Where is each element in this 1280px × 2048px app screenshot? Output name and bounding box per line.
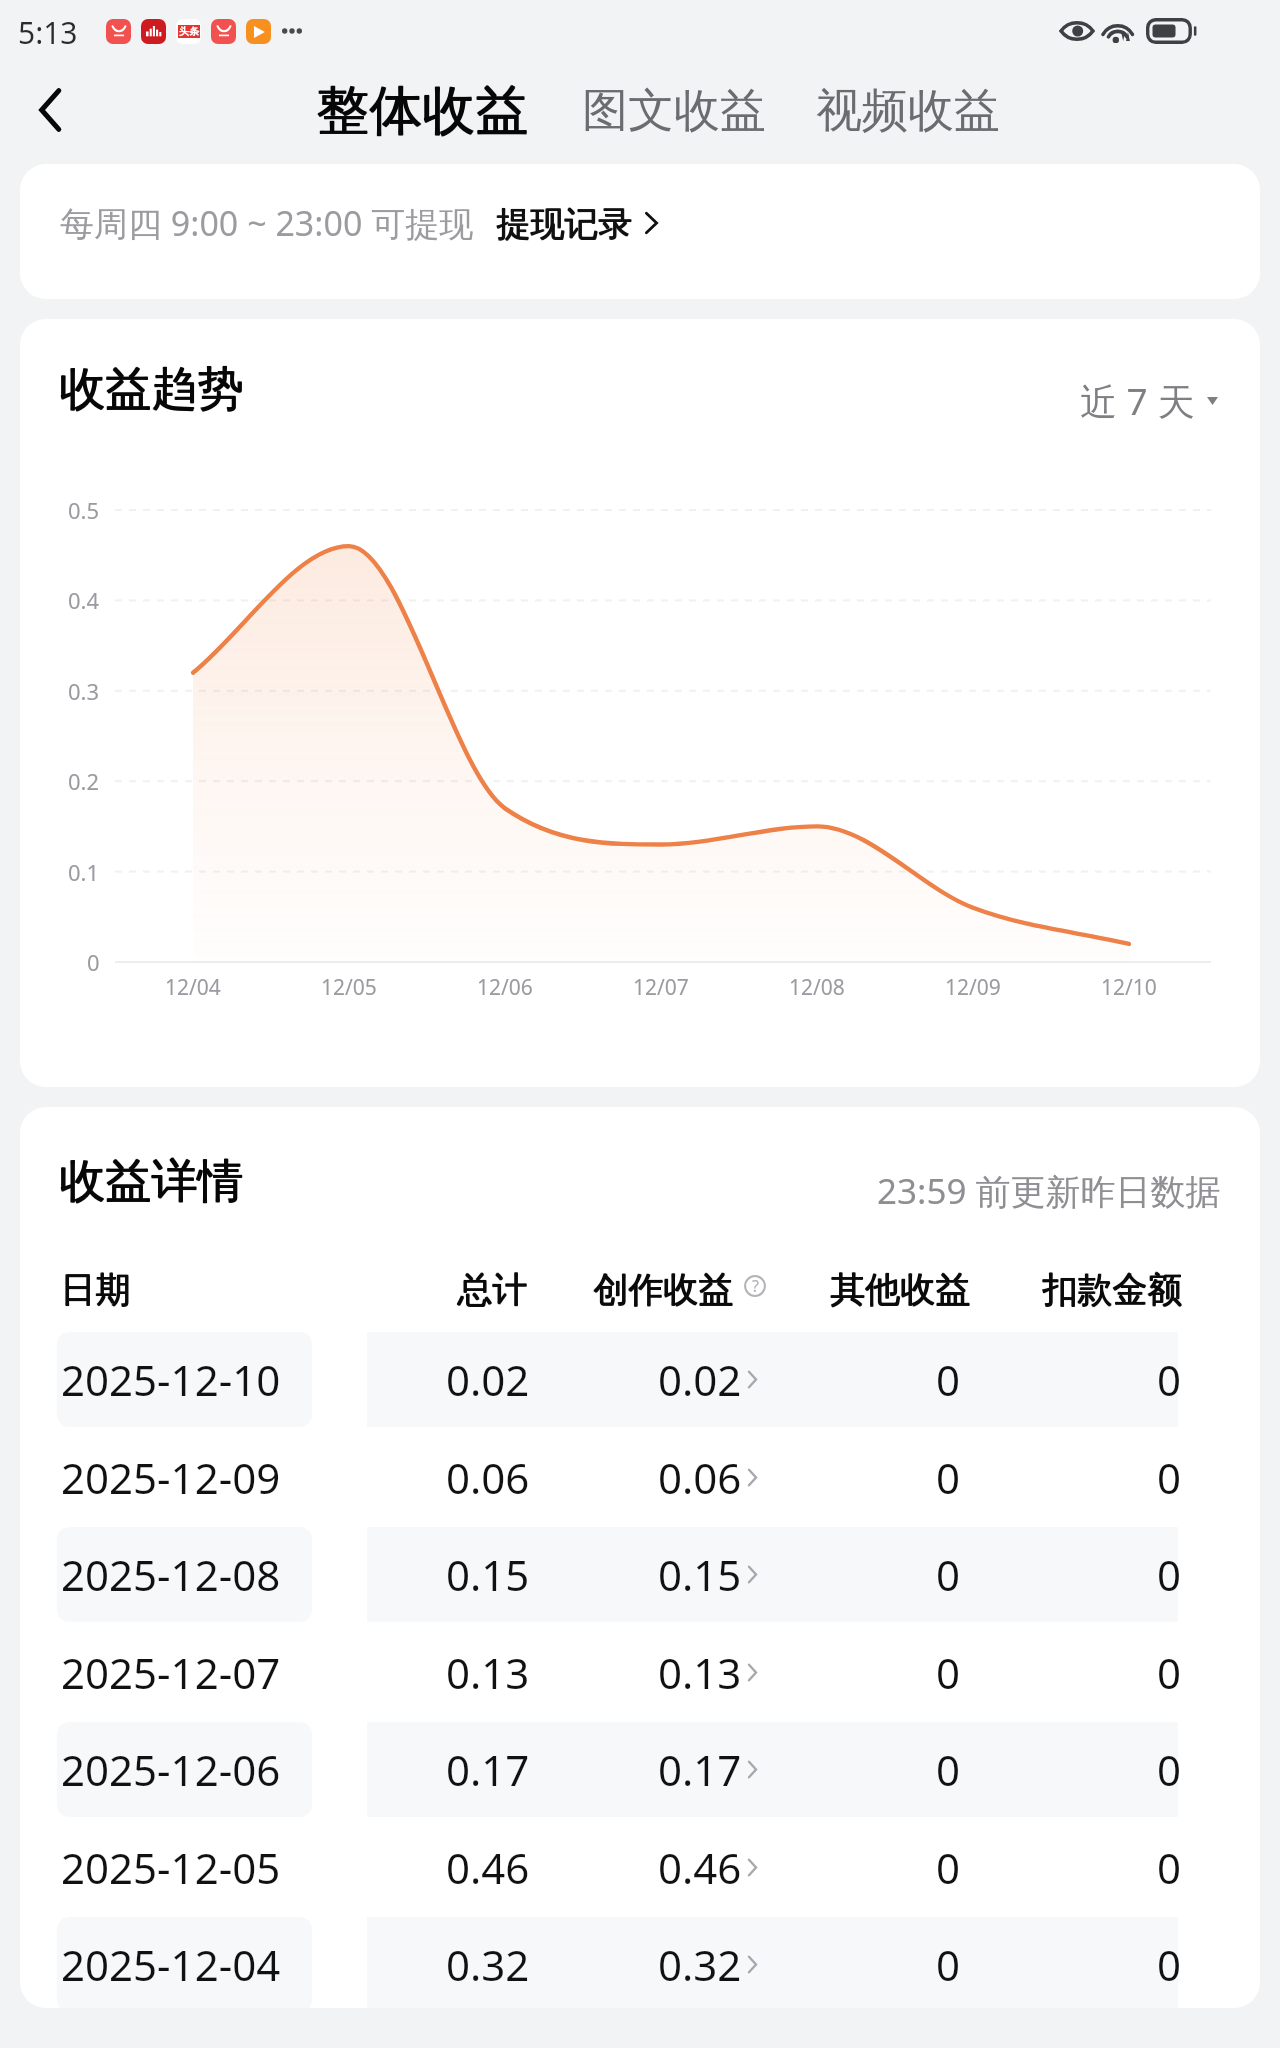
- staticText: 0.13: [446, 1644, 530, 1701]
- button[interactable]: 2025-12-04: [40, 1917, 560, 2008]
- staticText: ?: [752, 1275, 759, 1297]
- staticText: 收益详情: [59, 1152, 243, 1210]
- button[interactable]: Back: [20, 80, 80, 140]
- staticText: 0.06: [446, 1449, 530, 1506]
- staticText: 0.32: [446, 1936, 530, 1993]
- staticText: 0: [936, 1741, 961, 1798]
- staticText: 总计: [457, 1267, 527, 1311]
- staticText: 整体收益: [316, 77, 528, 144]
- staticText: 0: [936, 1839, 961, 1896]
- staticText: 总计: [458, 1268, 528, 1312]
- staticText: 0.46: [446, 1839, 530, 1896]
- staticText: 其他收益: [831, 1268, 971, 1312]
- staticText: 整体收益: [317, 78, 529, 145]
- staticText: 图文收益: [582, 82, 766, 140]
- staticText: 其他收益: [830, 1267, 970, 1311]
- staticText: 0.06: [658, 1449, 742, 1506]
- button[interactable]: 2025-12-06: [40, 1722, 560, 1817]
- button[interactable]: 每周四 9:00 ~ 23:00 可提现: [20, 164, 1260, 299]
- staticText: 5:13: [18, 12, 78, 53]
- staticText: 收益详情: [60, 1153, 244, 1211]
- button[interactable]: 2025-12-10: [40, 1332, 560, 1427]
- button[interactable]: 2025-12-09: [40, 1430, 560, 1525]
- staticText: 0.46: [658, 1839, 742, 1896]
- staticText: 0.15: [658, 1546, 742, 1603]
- staticText: 近 7 天: [1080, 375, 1195, 426]
- staticText: 收益详情: [60, 1152, 244, 1210]
- button[interactable]: 图文收益: [578, 72, 770, 150]
- button[interactable]: 0.32: [580, 1917, 780, 2008]
- staticText: 0: [1157, 1449, 1182, 1506]
- button[interactable]: 2025-12-05: [40, 1820, 560, 1915]
- button[interactable]: 0.46: [580, 1820, 780, 1915]
- staticText: 0: [936, 1936, 961, 1993]
- staticText: 整体收益: [316, 78, 528, 145]
- staticText: 0.13: [658, 1644, 742, 1701]
- staticText: 0: [1157, 1936, 1182, 1993]
- staticText: 23:59 前更新昨日数据: [877, 1167, 1221, 1215]
- staticText: 收益趋势: [60, 360, 244, 418]
- staticText: 总计: [458, 1267, 528, 1311]
- staticText: 扣款金额: [1042, 1267, 1182, 1311]
- staticText: 12/07: [633, 973, 689, 1002]
- staticText: 视频收益: [816, 82, 1000, 140]
- staticText: 创作收益: [593, 1267, 733, 1311]
- staticText: 0: [936, 1351, 961, 1408]
- staticText: 0.3: [68, 676, 100, 706]
- staticText: 日期: [61, 1268, 131, 1312]
- staticText: 其他收益: [831, 1267, 971, 1311]
- staticText: 日期: [61, 1267, 131, 1311]
- staticText: 收益趋势: [60, 361, 244, 419]
- staticText: 2025-12-04: [61, 1936, 281, 1993]
- staticText: 扣款金额: [1043, 1267, 1183, 1311]
- staticText: 0.2: [68, 766, 100, 796]
- staticText: 0: [936, 1449, 961, 1506]
- staticText: 日期: [60, 1267, 130, 1311]
- staticText: 0.17: [658, 1741, 742, 1798]
- button[interactable]: 近 7 天: [1076, 371, 1222, 430]
- staticText: 2025-12-09: [61, 1449, 281, 1506]
- staticText: 12/06: [477, 973, 533, 1002]
- button[interactable]: 0.17: [580, 1722, 780, 1817]
- staticText: 0: [936, 1644, 961, 1701]
- staticText: 0: [87, 947, 100, 977]
- button[interactable]: 0.02: [580, 1332, 780, 1427]
- button[interactable]: 0.13: [580, 1625, 780, 1720]
- button[interactable]: 2025-12-08: [40, 1527, 560, 1622]
- button[interactable]: 0.15: [580, 1527, 780, 1622]
- staticText: 提现记录: [497, 202, 633, 245]
- button[interactable]: 整体收益: [312, 67, 532, 154]
- staticText: 0: [1157, 1644, 1182, 1701]
- staticText: 2025-12-05: [61, 1839, 281, 1896]
- button[interactable]: Help: [744, 1275, 766, 1297]
- staticText: 0: [936, 1546, 961, 1603]
- staticText: 2025-12-06: [61, 1741, 281, 1798]
- staticText: 收益趋势: [59, 361, 243, 419]
- staticText: 创作收益: [594, 1267, 734, 1311]
- staticText: 创作收益: [593, 1268, 733, 1312]
- button[interactable]: 0.06: [580, 1430, 780, 1525]
- button[interactable]: 视频收益: [812, 72, 1004, 150]
- staticText: 0.32: [658, 1936, 742, 1993]
- staticText: 0.15: [446, 1546, 530, 1603]
- staticText: 0.02: [446, 1351, 530, 1408]
- staticText: 扣款金额: [1043, 1268, 1183, 1312]
- staticText: 每周四 9:00 ~ 23:00 可提现: [60, 200, 474, 246]
- button[interactable]: 2025-12-07: [40, 1625, 560, 1720]
- staticText: 提现记录: [496, 202, 632, 245]
- staticText: 12/09: [945, 973, 1001, 1002]
- staticText: 整体收益: [317, 77, 529, 144]
- staticText: 0.02: [658, 1351, 742, 1408]
- staticText: 12/05: [321, 973, 377, 1002]
- staticText: 12/08: [789, 973, 845, 1002]
- staticText: 头条: [179, 25, 199, 38]
- staticText: 扣款金额: [1042, 1268, 1182, 1312]
- staticText: 0: [1157, 1741, 1182, 1798]
- staticText: 0: [1157, 1546, 1182, 1603]
- staticText: 其他收益: [830, 1268, 970, 1312]
- staticText: 2025-12-10: [61, 1351, 281, 1408]
- staticText: 0.1: [68, 857, 100, 887]
- staticText: 日期: [60, 1268, 130, 1312]
- staticText: 收益详情: [59, 1153, 243, 1211]
- staticText: 创作收益: [594, 1268, 734, 1312]
